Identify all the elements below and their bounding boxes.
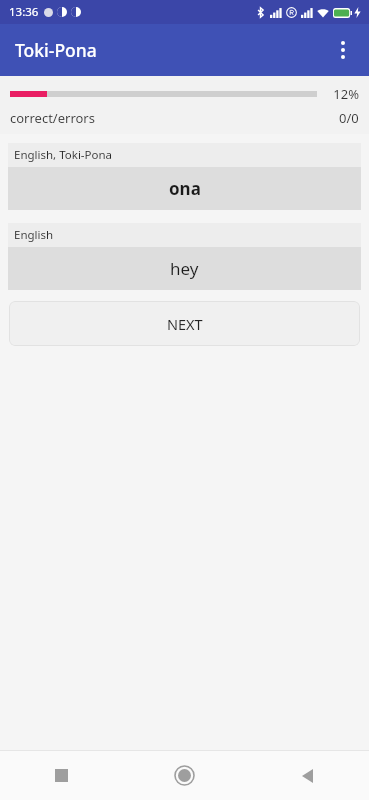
button[interactable]: Recent apps [0, 751, 123, 800]
button[interactable]: Back [246, 751, 369, 800]
staticText: ona [169, 177, 201, 200]
staticText: correct/errors [10, 109, 95, 127]
staticText: English, Toki-Pona [14, 147, 113, 163]
staticText: NEXT [167, 314, 203, 334]
button[interactable]: More options [323, 30, 363, 70]
staticText: Toki-Pona [15, 38, 97, 62]
button[interactable]: NEXT [9, 301, 360, 346]
staticText: 13:36 [9, 4, 39, 20]
button[interactable]: hey [8, 247, 361, 290]
staticText: English [14, 227, 54, 243]
button[interactable]: ona [8, 167, 361, 210]
staticText: 12% [327, 85, 359, 103]
staticText: hey [170, 257, 199, 280]
button[interactable]: Home [123, 751, 246, 800]
staticText: 0/0 [339, 109, 359, 127]
